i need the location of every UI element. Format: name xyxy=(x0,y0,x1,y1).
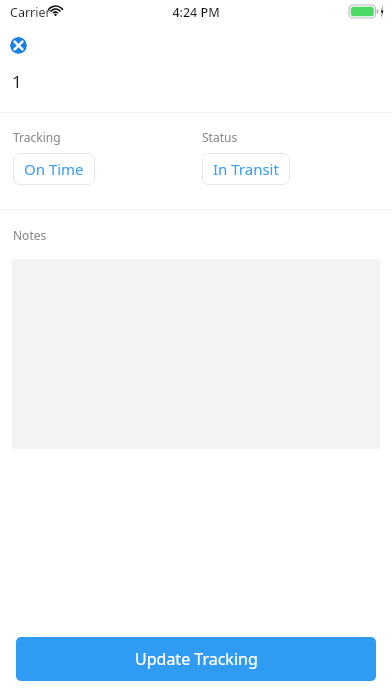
staticText: Status xyxy=(202,129,238,145)
button[interactable]: Close xyxy=(10,37,27,54)
button[interactable]: Update Tracking xyxy=(16,637,376,681)
staticText: Notes xyxy=(13,227,47,243)
staticText: Update Tracking xyxy=(135,648,258,670)
staticText: On Time xyxy=(24,159,84,179)
staticText: 4:24 PM xyxy=(172,4,220,21)
staticText: 1 xyxy=(12,70,22,93)
staticText: Carrier xyxy=(10,4,51,21)
button[interactable]: On Time xyxy=(13,153,95,185)
button[interactable]: In Transit xyxy=(202,153,290,185)
staticText: Tracking xyxy=(13,129,61,145)
staticText: In Transit xyxy=(213,159,279,179)
